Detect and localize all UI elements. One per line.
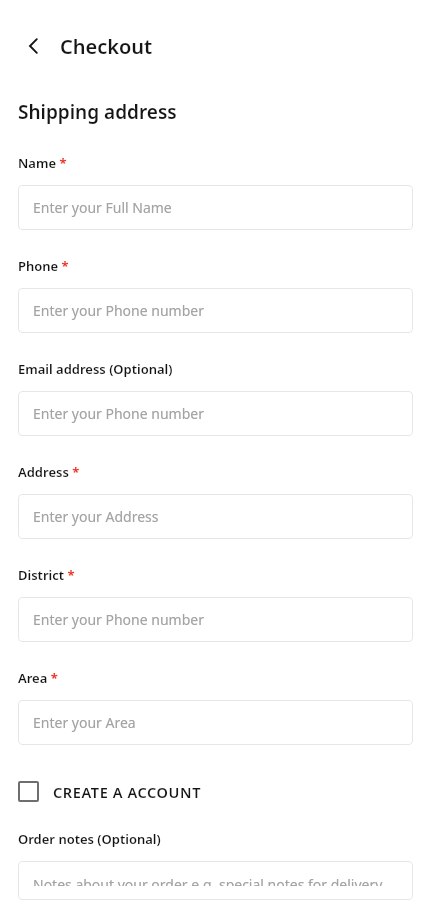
button[interactable]: Enter your Phone number <box>18 288 413 333</box>
button[interactable]: Back <box>18 30 50 62</box>
button[interactable]: Enter your Phone number <box>18 597 413 642</box>
staticText: CREATE A ACCOUNT <box>53 782 201 802</box>
button[interactable]: CREATE A ACCOUNT <box>18 781 413 802</box>
staticText: Address * <box>18 463 80 481</box>
button[interactable]: Enter your Area <box>18 700 413 745</box>
button[interactable]: Notes about your order e.g. special note… <box>18 861 413 900</box>
staticText: District * <box>18 566 75 584</box>
staticText: Enter your Phone number <box>33 404 204 423</box>
staticText: Enter your Address <box>33 507 159 526</box>
staticText: Enter your Phone number <box>33 610 204 629</box>
button[interactable]: Enter your Phone number <box>18 391 413 436</box>
staticText: Name * <box>18 154 67 172</box>
staticText: Order notes (Optional) <box>18 830 161 848</box>
staticText: Enter your Full Name <box>33 198 172 217</box>
staticText: Checkout <box>60 33 153 60</box>
staticText: Enter your Phone number <box>33 301 204 320</box>
staticText: Notes about your order e.g. special note… <box>33 875 383 886</box>
staticText: Email address (Optional) <box>18 360 173 378</box>
button[interactable]: Enter your Full Name <box>18 185 413 230</box>
staticText: Enter your Area <box>33 713 136 732</box>
staticText: Shipping address <box>18 99 177 125</box>
staticText: Area * <box>18 669 58 687</box>
button[interactable]: Enter your Address <box>18 494 413 539</box>
staticText: Phone * <box>18 257 69 275</box>
